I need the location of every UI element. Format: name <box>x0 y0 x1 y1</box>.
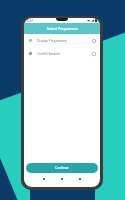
button[interactable]: Continue <box>26 163 98 173</box>
staticText: Display Programme <box>37 39 92 43</box>
button[interactable]: Home <box>59 176 65 182</box>
staticText: Continue <box>55 166 69 170</box>
button[interactable]: Display Programme <box>24 34 100 47</box>
staticText: Select Programme <box>47 26 78 31</box>
button[interactable]: Back <box>41 176 47 182</box>
button[interactable]: Confilit Student <box>24 47 100 60</box>
staticText: Confilit Student <box>37 52 92 56</box>
button[interactable]: Recents <box>77 176 83 182</box>
staticText: 9:41 <box>27 19 34 23</box>
